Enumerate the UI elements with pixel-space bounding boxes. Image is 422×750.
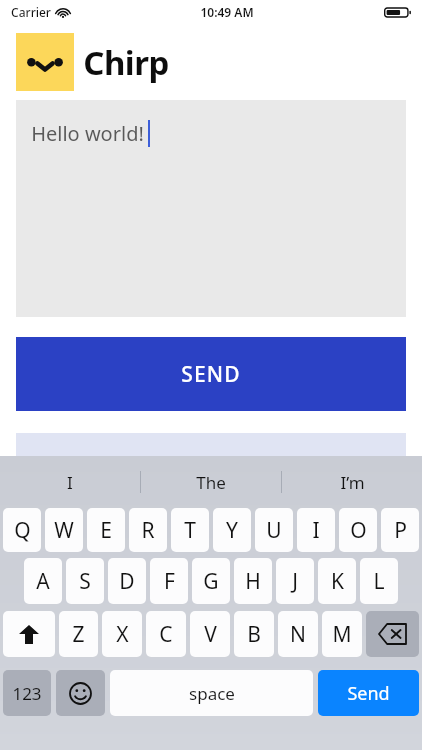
staticText: C (159, 620, 173, 649)
staticText: Send (347, 681, 390, 706)
staticText: I (67, 471, 73, 494)
button[interactable]: H (234, 558, 272, 604)
button[interactable]: Q (3, 508, 41, 552)
button[interactable]: V (190, 611, 230, 657)
staticText: Y (226, 516, 238, 545)
button[interactable]: D (108, 558, 146, 604)
staticText: P (394, 516, 407, 545)
button[interactable]: I’m (282, 456, 422, 508)
button[interactable]: The (141, 456, 281, 508)
button[interactable]: Z (59, 611, 98, 657)
staticText: S (79, 567, 91, 596)
button[interactable]: Hello world! (16, 100, 406, 317)
staticText: SEND (181, 360, 241, 389)
button[interactable]: B (234, 611, 274, 657)
staticText: D (119, 567, 135, 596)
button[interactable]: X (102, 611, 142, 657)
button[interactable]: F (150, 558, 188, 604)
button[interactable]: I (297, 508, 335, 552)
staticText: Q (14, 516, 31, 545)
staticText: U (266, 516, 282, 545)
staticText: B (247, 620, 261, 649)
button[interactable]: A (24, 558, 62, 604)
button[interactable]: Backspace (366, 611, 419, 657)
button[interactable]: J (276, 558, 314, 604)
staticText: R (141, 516, 155, 545)
button[interactable]: K (318, 558, 356, 604)
staticText: G (203, 567, 219, 596)
staticText: E (100, 516, 112, 545)
button[interactable]: Send (318, 670, 419, 716)
staticText: F (164, 567, 175, 596)
button[interactable]: E (87, 508, 125, 552)
button[interactable]: M (322, 611, 362, 657)
staticText: Z (72, 620, 85, 649)
button[interactable]: space (110, 670, 313, 716)
button[interactable]: T (171, 508, 209, 552)
staticText: Carrier (11, 4, 51, 20)
staticText: H (245, 567, 261, 596)
button[interactable]: U (255, 508, 293, 552)
button[interactable]: R (129, 508, 167, 552)
button[interactable]: Y (213, 508, 251, 552)
staticText: L (373, 567, 385, 596)
button[interactable]: P (381, 508, 419, 552)
button[interactable]: O (339, 508, 377, 552)
button[interactable]: I (0, 456, 140, 508)
staticText: space (189, 682, 235, 705)
staticText: T (184, 516, 196, 545)
button[interactable]: C (146, 611, 186, 657)
staticText: W (54, 516, 74, 545)
staticText: X (116, 620, 129, 649)
staticText: 123 (12, 682, 42, 705)
button[interactable]: G (192, 558, 230, 604)
staticText: O (350, 516, 367, 545)
staticText: I (312, 516, 320, 545)
staticText: K (331, 567, 344, 596)
button[interactable]: L (360, 558, 398, 604)
staticText: I’m (340, 471, 365, 494)
staticText: The (196, 471, 226, 494)
staticText: N (290, 620, 306, 649)
staticText: Chirp (83, 40, 169, 85)
staticText: Hello world! (31, 120, 144, 147)
staticText: 10:49 AM (200, 4, 254, 20)
staticText: J (292, 567, 298, 596)
button[interactable]: Emoji (56, 670, 105, 716)
staticText: V (204, 620, 217, 649)
staticText: A (36, 567, 50, 596)
button[interactable]: 123 (3, 670, 51, 716)
button[interactable]: Shift (3, 611, 55, 657)
button[interactable]: W (45, 508, 83, 552)
staticText: M (332, 620, 352, 649)
button[interactable]: SEND (16, 337, 406, 411)
button[interactable]: S (66, 558, 104, 604)
button[interactable]: N (278, 611, 318, 657)
